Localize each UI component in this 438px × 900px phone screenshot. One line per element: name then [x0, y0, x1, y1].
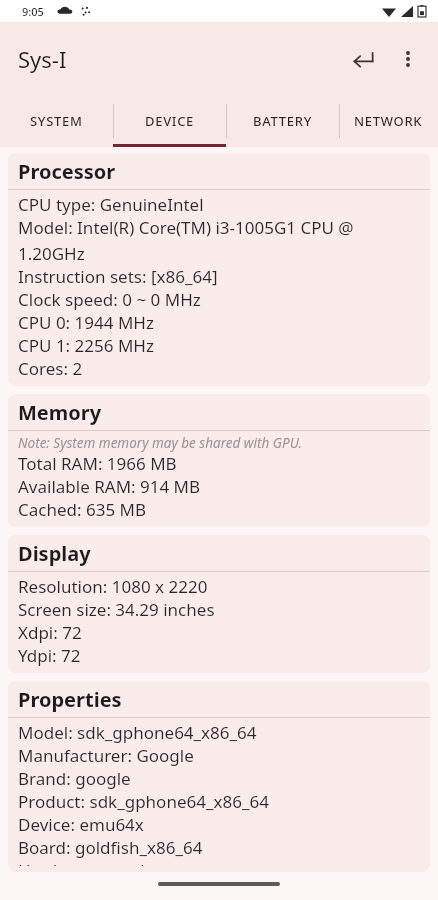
button[interactable]: DEVICE	[113, 95, 226, 147]
staticText: CPU 0: 1944 MHz	[18, 311, 154, 334]
staticText: CPU 1: 2256 MHz	[18, 334, 154, 357]
staticText: Product: sdk_gphone64_x86_64	[18, 790, 269, 813]
button[interactable]: Memory	[8, 394, 430, 527]
staticText: Resolution: 1080 x 2220	[18, 575, 208, 598]
button[interactable]: BATTERY	[226, 95, 339, 147]
staticText: Hardware: ranchu	[18, 859, 162, 866]
staticText: Instruction sets: [x86_64]	[18, 265, 218, 288]
staticText: Properties	[18, 686, 122, 713]
staticText: Note: System memory may be shared with G…	[18, 434, 302, 452]
staticText: Cores: 2	[18, 357, 83, 380]
staticText: Display	[18, 540, 91, 567]
button[interactable]: More options	[386, 37, 430, 81]
staticText: Manufacturer: Google	[18, 744, 194, 767]
staticText: DEVICE	[145, 112, 195, 130]
staticText: Memory	[18, 399, 102, 426]
staticText: NETWORK	[354, 112, 423, 130]
button[interactable]: Processor	[8, 153, 430, 386]
staticText: Board: goldfish_x86_64	[18, 836, 203, 859]
staticText: Sys-I	[18, 44, 67, 74]
staticText: Total RAM: 1966 MB	[18, 452, 177, 475]
button[interactable]: Properties	[8, 681, 430, 872]
staticText: Screen size: 34.29 inches	[18, 598, 215, 621]
staticText: Available RAM: 914 MB	[18, 475, 201, 498]
staticText: Clock speed: 0 ~ 0 MHz	[18, 288, 201, 311]
staticText: 9:05	[22, 4, 44, 19]
button[interactable]: NETWORK	[339, 95, 438, 147]
staticText: Model: Intel(R) Core(TM) i3-1005G1 CPU @…	[18, 216, 422, 265]
staticText: CPU type: GenuineIntel	[18, 193, 204, 216]
button[interactable]: SYSTEM	[0, 95, 113, 147]
staticText: SYSTEM	[30, 112, 83, 130]
staticText: Cached: 635 MB	[18, 498, 147, 521]
staticText: Brand: google	[18, 767, 131, 790]
button[interactable]: Back	[342, 37, 386, 81]
staticText: Processor	[18, 158, 116, 185]
button[interactable]: Display	[8, 535, 430, 673]
staticText: Ydpi: 72	[18, 644, 81, 667]
staticText: Device: emu64x	[18, 813, 144, 836]
staticText: BATTERY	[253, 112, 312, 130]
staticText: Xdpi: 72	[18, 621, 82, 644]
staticText: Model: sdk_gphone64_x86_64	[18, 721, 257, 744]
